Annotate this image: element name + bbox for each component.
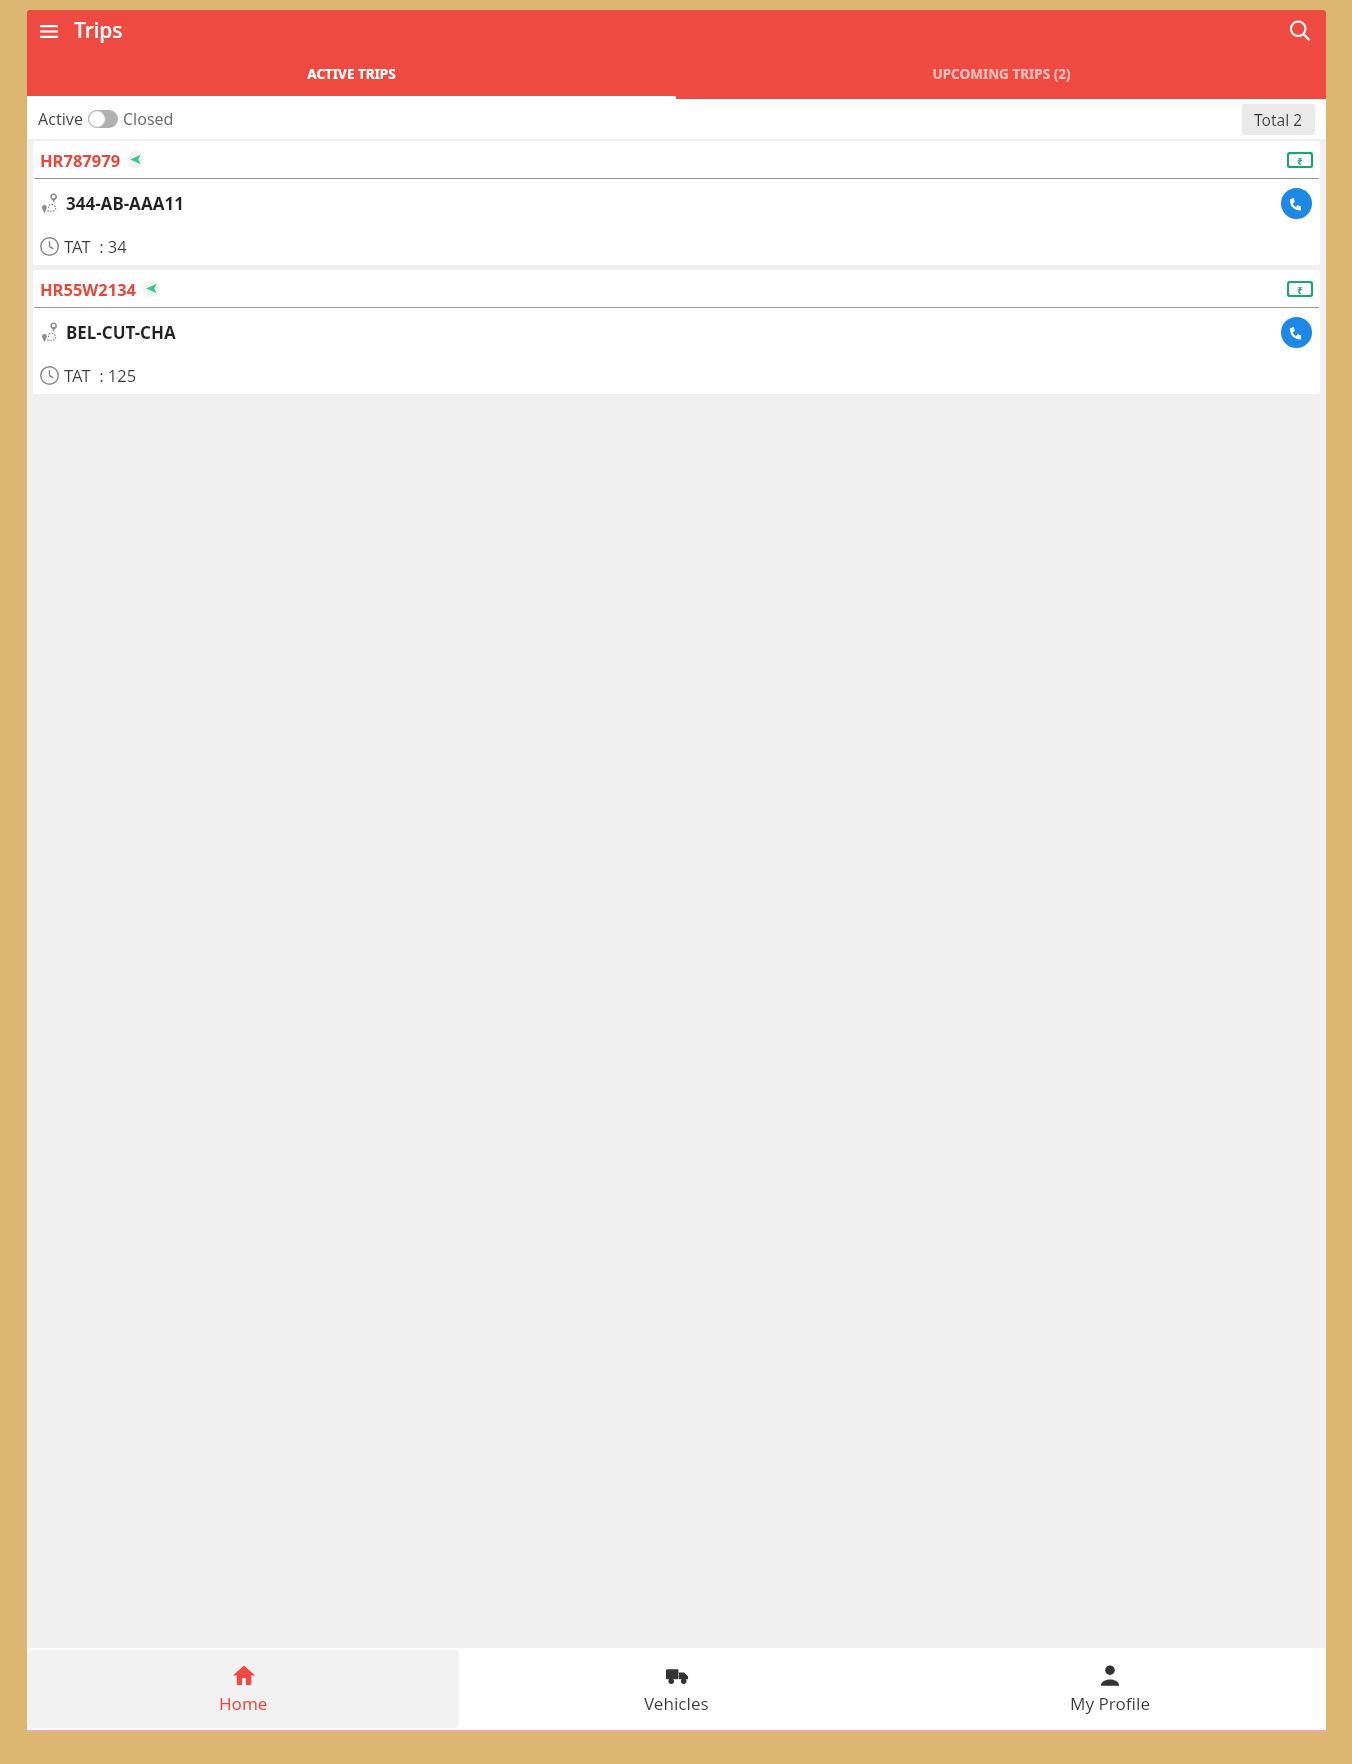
button[interactable]: HR787979	[33, 141, 1320, 265]
button[interactable]: Payment	[1287, 281, 1313, 297]
staticText: ₹	[1297, 154, 1303, 166]
staticText: TAT : 125	[64, 364, 137, 386]
staticText: Vehicles	[644, 1692, 709, 1715]
staticText: Total 2	[1254, 109, 1303, 130]
button[interactable]: Vehicles	[461, 1650, 892, 1728]
staticText: HR787979	[40, 149, 121, 171]
staticText: UPCOMING TRIPS (2)	[932, 65, 1071, 83]
staticText: 344-AB-AAA11	[66, 192, 184, 215]
staticText: BEL-CUT-CHA	[66, 321, 176, 344]
staticText: Home	[219, 1692, 268, 1715]
staticText: Closed	[123, 108, 174, 130]
button[interactable]: Open navigation menu	[34, 16, 64, 46]
staticText: ₹	[1297, 283, 1303, 295]
staticText: ACTIVE TRIPS	[307, 65, 396, 83]
staticText: HR55W2134	[40, 278, 137, 300]
staticText: Active	[38, 108, 83, 130]
staticText: My Profile	[1070, 1692, 1150, 1715]
button[interactable]: Total 2	[1242, 104, 1315, 135]
button[interactable]: Search	[1284, 15, 1316, 47]
button[interactable]: Call driver	[1281, 188, 1312, 219]
button[interactable]: UPCOMING TRIPS (2)	[676, 51, 1326, 96]
staticText: TAT : 34	[64, 235, 127, 257]
button[interactable]: Call driver	[1281, 317, 1312, 348]
button[interactable]: Home	[28, 1650, 459, 1728]
button[interactable]: Active	[38, 108, 174, 130]
button[interactable]: ACTIVE TRIPS	[27, 51, 676, 96]
button[interactable]: Payment	[1287, 152, 1313, 168]
button[interactable]: HR55W2134	[33, 270, 1320, 394]
button[interactable]: My Profile	[894, 1650, 1325, 1728]
staticText: Trips	[74, 16, 123, 45]
